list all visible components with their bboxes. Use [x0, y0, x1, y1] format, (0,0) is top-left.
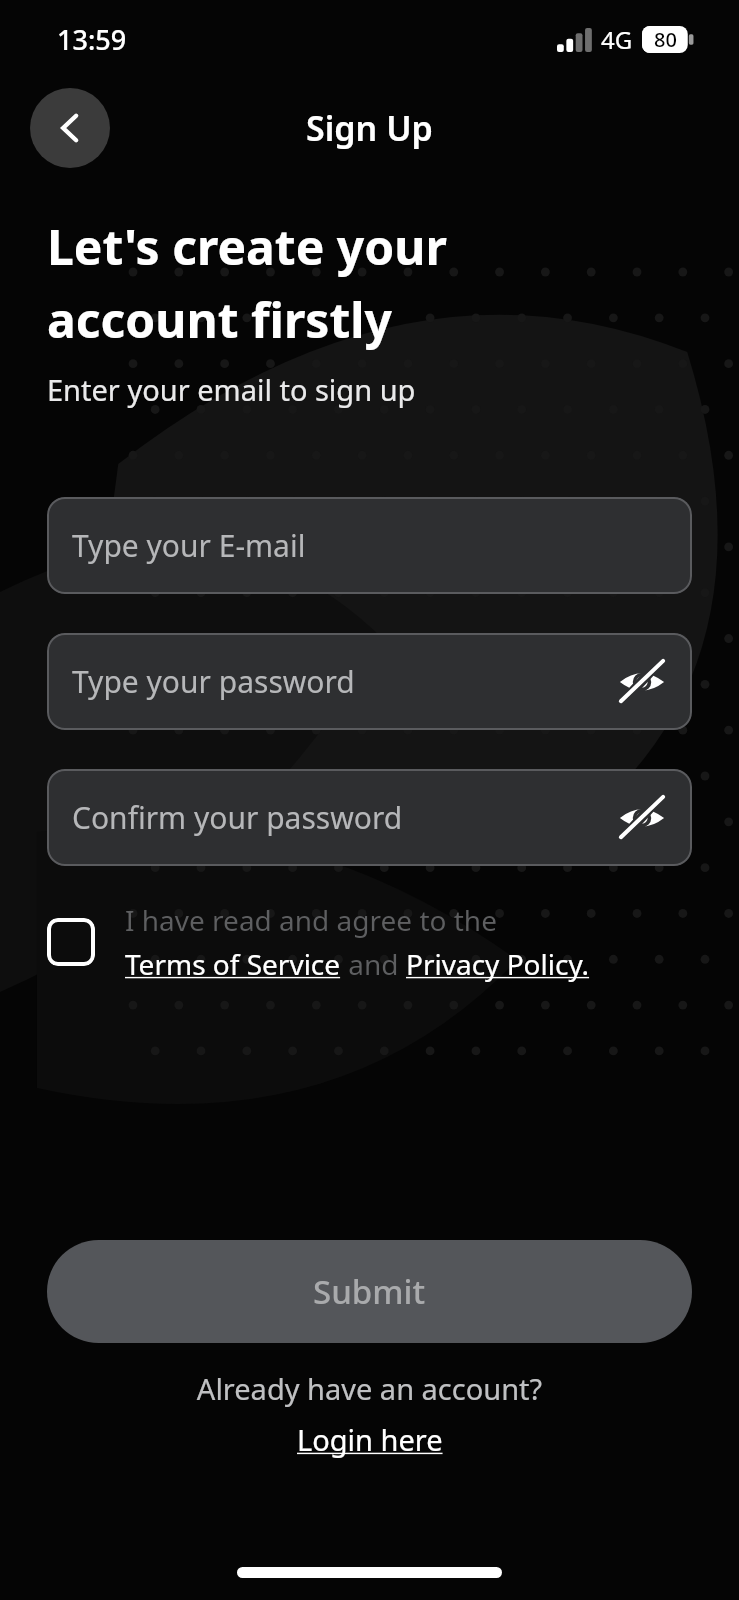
staticText: Type your password [72, 661, 355, 702]
button[interactable]: Show password [610, 650, 674, 714]
staticText: and [341, 945, 406, 983]
staticText: Already have an account? [47, 1369, 692, 1408]
button[interactable]: Login here [297, 1420, 443, 1459]
button[interactable]: Terms of Service [125, 945, 341, 983]
staticText: Submit [313, 1269, 426, 1314]
staticText: 4G [601, 23, 633, 56]
staticText: 13:59 [57, 21, 127, 58]
button[interactable]: Agree to terms [47, 901, 692, 983]
other: Agree to terms [47, 918, 95, 966]
button[interactable]: Privacy Policy. [406, 945, 590, 983]
button[interactable]: Type your password [47, 633, 692, 730]
button[interactable]: Type your E-mail [47, 497, 692, 594]
button[interactable]: Confirm your password [47, 769, 692, 866]
staticText: 80 [654, 26, 677, 53]
staticText: I have read and agree to the [125, 901, 497, 939]
button[interactable]: Submit [47, 1240, 692, 1343]
staticText: Type your E-mail [72, 525, 306, 566]
button[interactable]: Back [30, 88, 110, 168]
staticText: Enter your email to sign up [47, 370, 416, 409]
button[interactable]: Show password [610, 786, 674, 850]
staticText: Confirm your password [72, 797, 403, 838]
staticText: Sign Up [306, 105, 433, 151]
staticText: Let's create your account firstly [47, 214, 447, 352]
